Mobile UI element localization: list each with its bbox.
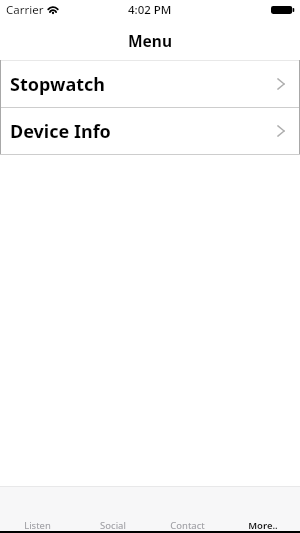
staticText: Contact [170,519,205,532]
staticText: Social [100,519,126,532]
button[interactable]: Listen [0,487,75,531]
staticText: 4:02 PM [128,2,172,18]
button[interactable]: Social [75,487,150,531]
staticText: Carrier [6,2,44,18]
staticText: Menu [128,30,173,51]
staticText: More.. [248,519,278,532]
button[interactable]: Contact [150,487,225,531]
staticText: Listen [24,519,51,532]
button[interactable]: More.. [225,487,300,531]
button[interactable]: Device Info [0,108,300,154]
staticText: Device Info [10,119,111,144]
button[interactable]: Stopwatch [0,61,300,107]
staticText: Stopwatch [10,72,105,97]
